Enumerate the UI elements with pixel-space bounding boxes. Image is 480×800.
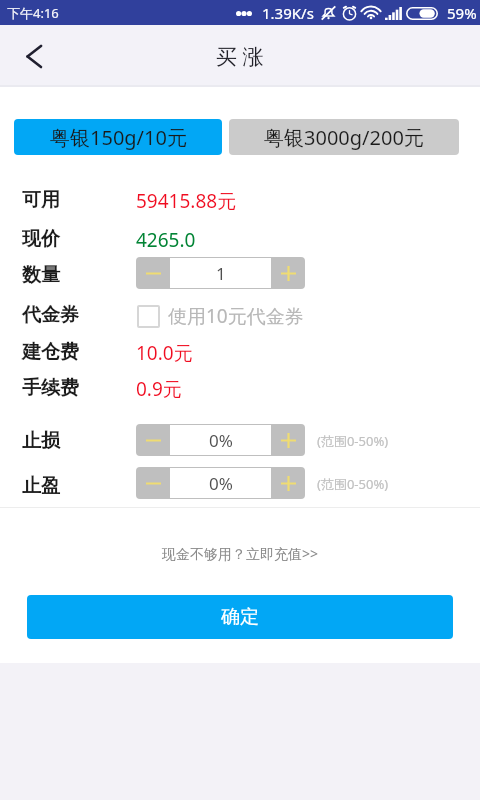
staticText: 可用 bbox=[22, 188, 60, 212]
staticText: 0% bbox=[209, 429, 233, 452]
staticText: 数量 bbox=[22, 263, 60, 287]
staticText: 确定 bbox=[221, 605, 259, 629]
button[interactable]: 粤银150g/10元 bbox=[14, 119, 222, 155]
staticText: 1.39K/s bbox=[262, 3, 314, 23]
button[interactable]: 粤银3000g/200元 bbox=[229, 119, 459, 155]
staticText: 止盈 bbox=[22, 474, 60, 498]
staticText: (范围0-50%) bbox=[317, 432, 389, 450]
staticText: 59415.88元 bbox=[136, 188, 237, 214]
button[interactable]: Decrease bbox=[136, 424, 170, 456]
button[interactable]: 确定 bbox=[27, 595, 453, 639]
staticText: 10.0元 bbox=[136, 340, 193, 366]
staticText: 代金券 bbox=[22, 303, 79, 327]
staticText: 现价 bbox=[22, 227, 60, 251]
staticText: 0% bbox=[209, 472, 233, 495]
staticText: 买 涨 bbox=[216, 42, 264, 71]
button[interactable]: Decrease bbox=[136, 257, 170, 289]
button[interactable]: Increase bbox=[271, 467, 305, 499]
staticText: 建仓费 bbox=[22, 340, 79, 364]
staticText: 1 bbox=[216, 262, 226, 285]
staticText: 0.9元 bbox=[136, 376, 182, 402]
staticText: 手续费 bbox=[22, 376, 79, 400]
staticText: (范围0-50%) bbox=[317, 475, 389, 493]
staticText: 使用10元代金券 bbox=[168, 303, 304, 329]
staticText: 4265.0 bbox=[136, 227, 196, 253]
button[interactable]: Increase bbox=[271, 424, 305, 456]
button[interactable]: Increase bbox=[271, 257, 305, 289]
staticText: 粤银3000g/200元 bbox=[264, 124, 424, 151]
button[interactable]: Decrease bbox=[136, 467, 170, 499]
staticText: 止损 bbox=[22, 429, 60, 453]
staticText: 现金不够用？立即充值>> bbox=[0, 544, 480, 563]
staticText: 59% bbox=[447, 3, 477, 23]
staticText: 下午4:16 bbox=[7, 4, 59, 22]
staticText: 粤银150g/10元 bbox=[50, 124, 187, 151]
button[interactable]: Back bbox=[12, 35, 54, 77]
button[interactable]: 使用10元代金券 bbox=[137, 303, 304, 329]
